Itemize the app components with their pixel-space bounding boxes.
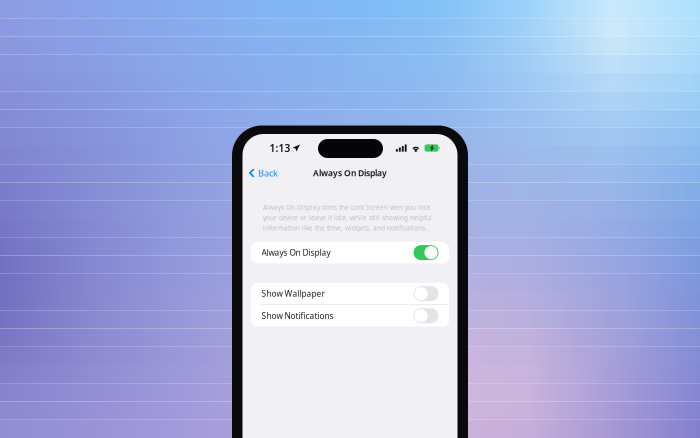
staticText: Back	[258, 167, 278, 179]
staticText: Always On Display	[313, 167, 387, 179]
button[interactable]: Show Notifications	[251, 305, 449, 326]
staticText: Show Notifications	[261, 310, 333, 321]
staticText: Always On Display	[261, 247, 330, 258]
staticText: 1:13	[269, 141, 290, 155]
staticText: Show Wallpaper	[261, 288, 324, 299]
staticText: Always On Display dims the Lock Screen w…	[263, 203, 432, 232]
button[interactable]: Back	[243, 163, 284, 183]
button[interactable]: Show Wallpaper	[251, 283, 449, 304]
button[interactable]: Always On Display	[251, 242, 449, 263]
